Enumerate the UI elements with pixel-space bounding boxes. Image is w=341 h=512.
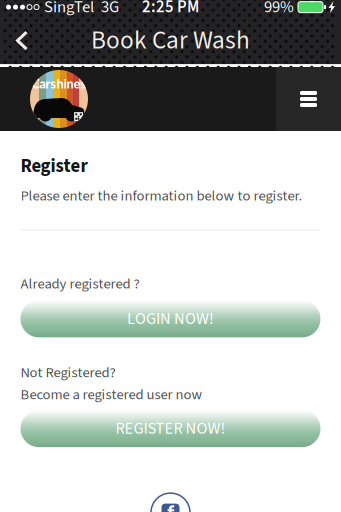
staticText: Carshines	[31, 76, 86, 91]
staticText: LOGIN NOW!	[127, 307, 214, 331]
staticText: Please enter the information below to re…	[20, 186, 302, 206]
button[interactable]: LOGIN NOW!	[20, 300, 320, 337]
button[interactable]: Sign in with Facebook	[151, 493, 190, 512]
button[interactable]: REGISTER NOW!	[20, 410, 320, 447]
staticText: Become a registered user now	[20, 384, 202, 405]
staticText: REGISTER NOW!	[115, 417, 225, 440]
button[interactable]: Menu	[276, 67, 341, 131]
staticText: SingTel	[44, 0, 94, 19]
staticText: Not Registered?	[20, 362, 115, 383]
staticText: 2:25 PM	[142, 0, 199, 19]
button[interactable]: Back	[0, 17, 44, 64]
staticText: Register	[20, 153, 87, 180]
staticText: f	[167, 501, 174, 512]
staticText: 99%	[264, 0, 294, 19]
staticText: 3G	[101, 0, 119, 19]
staticText: Already registered ?	[20, 273, 139, 294]
staticText: Book Car Wash	[91, 23, 250, 59]
